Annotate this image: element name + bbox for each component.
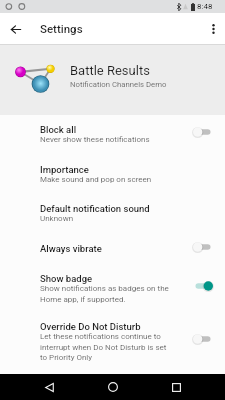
button[interactable]: Back [38,376,60,398]
button[interactable]: Override Do Not Disturb [0,312,225,371]
staticText: Override Do Not Disturb [40,321,141,332]
button[interactable]: Show badge [0,264,225,312]
button[interactable]: Always vibrate [0,234,225,261]
staticText: Notification Channels Demo [70,80,167,89]
staticText: 8:48 [197,2,213,11]
button[interactable]: Home [102,376,124,398]
button[interactable]: Default notification sound [0,194,225,232]
button[interactable]: Toggle Show badge [191,278,215,294]
button[interactable]: Navigate up [4,17,28,41]
staticText: Show badge [40,273,93,284]
staticText: Unknown [40,214,74,223]
button[interactable]: Block all [0,115,225,153]
staticText: Never show these notifications [40,135,150,144]
button[interactable]: Recent apps [165,376,187,398]
staticText: Block all [40,124,77,135]
staticText: Battle Results [70,63,150,78]
staticText: Show notifications as badges on the Home… [40,284,169,304]
button[interactable]: More options [201,17,225,41]
staticText: Always vibrate [40,243,102,254]
staticText: Settings [40,22,83,35]
button[interactable]: Toggle Block all [191,124,215,140]
staticText: Importance [40,164,89,175]
button[interactable]: Toggle Override Do Not Disturb [191,331,215,347]
button[interactable]: Importance [0,155,225,193]
staticText: Default notification sound [40,203,150,214]
button[interactable]: Toggle Always vibrate [191,239,215,255]
staticText: Let these notifications continue to inte… [40,332,167,362]
staticText: Make sound and pop on screen [40,175,152,184]
